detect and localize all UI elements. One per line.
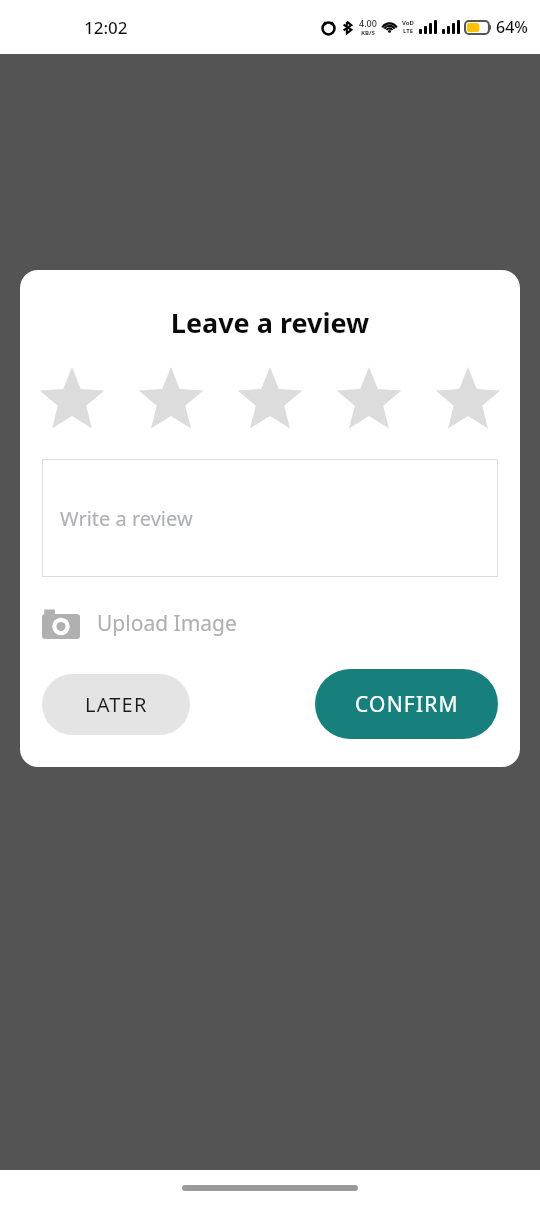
staticText: 12:02: [84, 16, 128, 39]
staticText: Rahul Business: [204, 571, 339, 597]
staticText: Upload Image: [97, 609, 237, 638]
staticText: 0 Follower: [271, 656, 353, 679]
button[interactable]: Write a review: [42, 459, 498, 577]
staticText: Claimed: [230, 627, 292, 649]
button[interactable]: [10, 245, 530, 545]
staticText: 64%: [496, 16, 528, 38]
button[interactable]: CONFIRM: [315, 669, 498, 739]
staticText: 6 Km away: [234, 687, 321, 710]
staticText: KB/S: [361, 29, 375, 37]
staticText: LTE: [403, 27, 414, 35]
staticText: VoD: [402, 19, 414, 27]
staticText: LATER: [85, 691, 148, 718]
button[interactable]: Rate 4 stars: [333, 363, 405, 435]
staticText: 4.00: [359, 17, 377, 29]
button[interactable]: Upload Image: [42, 607, 498, 639]
staticText: CONFIRM: [355, 690, 459, 719]
button[interactable]: Rate 5 stars: [432, 363, 504, 435]
button[interactable]: Rate 2 stars: [135, 363, 207, 435]
button[interactable]: Rahul Business: [10, 555, 530, 725]
button[interactable]: Rate 3 stars: [234, 363, 306, 435]
staticText: Leave a review: [20, 304, 520, 341]
staticText: 1234: [204, 597, 248, 623]
button[interactable]: LATER: [42, 674, 190, 735]
button[interactable]: Rate 1 stars: [36, 363, 108, 435]
staticText: Write a review: [60, 505, 193, 532]
